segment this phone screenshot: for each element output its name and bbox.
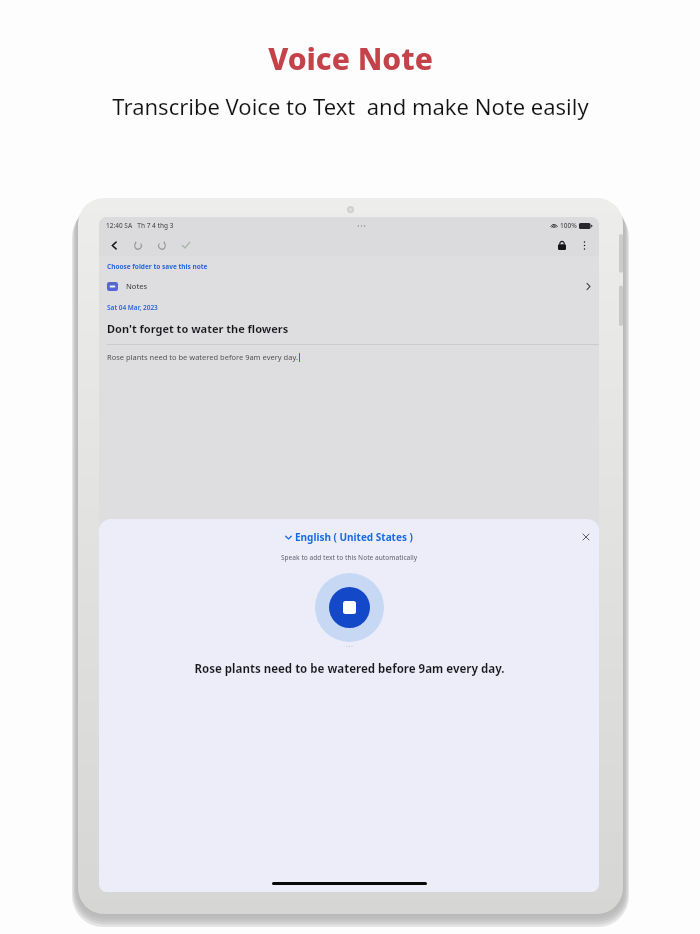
button[interactable]: Back [105,236,123,254]
button[interactable]: Notes [99,277,599,295]
staticText: Rose plants need to be watered before 9a… [107,352,298,362]
staticText: Speak to add text to this Note automatic… [281,553,418,562]
staticText: Choose folder to save this note [107,262,208,271]
staticText: Don't forget to water the flowers [107,321,289,336]
button[interactable]: Undo [129,236,147,254]
staticText: Notes [126,281,148,291]
button[interactable]: Save [177,236,195,254]
button[interactable]: More options [575,236,593,254]
button[interactable]: Lock note [553,236,571,254]
button[interactable]: Redo [153,236,171,254]
button[interactable]: English ( United States ) [281,528,417,546]
staticText: 100% [560,221,577,230]
staticText: English ( United States ) [295,530,413,544]
staticText: 12:40 SA Th 7 4 thg 3 [106,221,174,230]
staticText: Sat 04 Mar, 2023 [107,303,158,312]
staticText: Rose plants need to be watered before 9a… [194,661,505,677]
button[interactable]: Stop recording [315,573,384,642]
staticText: Voice Note [268,38,433,79]
staticText: Transcribe Voice to Text and make Note e… [112,91,589,121]
button[interactable]: Close [579,530,593,544]
